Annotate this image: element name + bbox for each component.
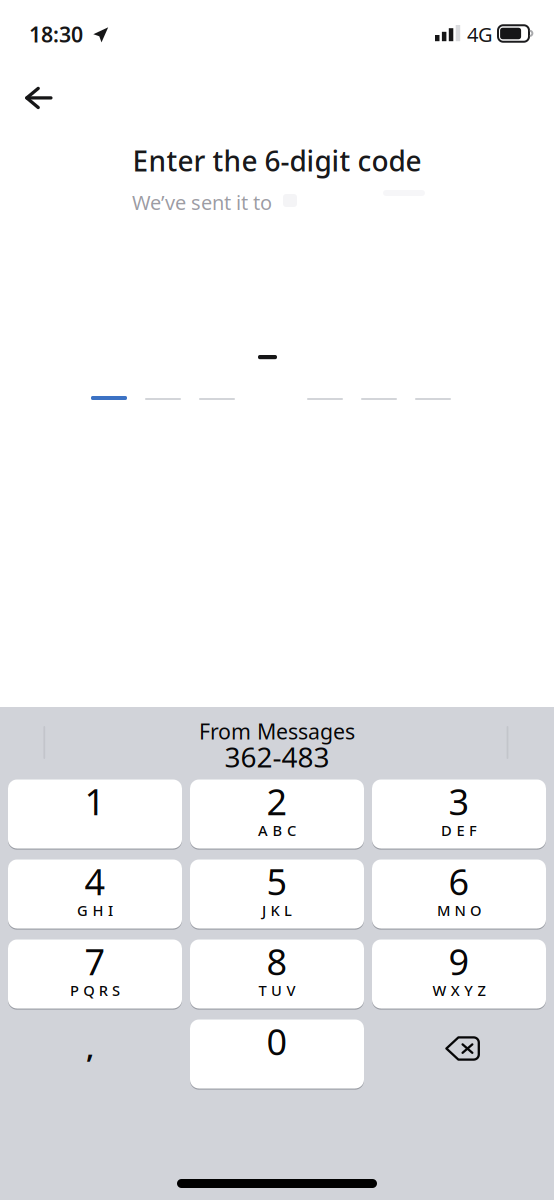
staticText: 0: [266, 1017, 287, 1065]
button[interactable]: Back: [0, 72, 76, 130]
staticText: We’ve sent it to: [132, 189, 272, 216]
staticText: F: [469, 820, 477, 840]
staticText: ,: [86, 1027, 94, 1066]
staticText: B: [272, 820, 282, 840]
staticText: M: [437, 900, 450, 920]
button[interactable]: 3: [372, 779, 546, 849]
staticText: 5: [266, 857, 287, 905]
staticText: R: [99, 980, 108, 1000]
button[interactable]: 8: [190, 939, 364, 1009]
staticText: H: [92, 900, 103, 920]
staticText: W: [432, 980, 446, 1000]
button[interactable]: 7: [8, 939, 182, 1009]
staticText: X: [451, 980, 460, 1000]
staticText: T: [259, 980, 267, 1000]
staticText: 2: [266, 777, 287, 825]
staticText: N: [454, 900, 465, 920]
staticText: E: [456, 820, 464, 840]
staticText: G: [77, 900, 88, 920]
staticText: From Messages: [199, 717, 355, 745]
staticText: Q: [83, 980, 94, 1000]
staticText: 18:30: [29, 20, 83, 48]
staticText: 362-483: [224, 738, 329, 775]
staticText: Enter the 6-digit code: [132, 142, 421, 179]
staticText: O: [470, 900, 481, 920]
staticText: I: [108, 900, 113, 920]
staticText: 7: [84, 937, 105, 985]
staticText: S: [112, 980, 120, 1000]
button[interactable]: Comma: [8, 1019, 182, 1089]
staticText: L: [284, 900, 292, 920]
staticText: U: [271, 980, 282, 1000]
staticText: 4: [84, 857, 105, 905]
button[interactable]: 0: [190, 1019, 364, 1089]
button[interactable]: 4: [8, 859, 182, 929]
staticText: C: [287, 820, 296, 840]
staticText: 1: [84, 777, 105, 825]
staticText: 8: [266, 937, 287, 985]
staticText: Z: [478, 980, 486, 1000]
staticText: P: [70, 980, 79, 1000]
button[interactable]: 2: [190, 779, 364, 849]
button[interactable]: 6: [372, 859, 546, 929]
staticText: 4G: [467, 21, 493, 48]
staticText: V: [286, 980, 295, 1000]
staticText: A: [258, 820, 268, 840]
staticText: 3: [448, 777, 469, 825]
staticText: 6: [448, 857, 469, 905]
staticText: J: [262, 900, 266, 920]
staticText: D: [441, 820, 452, 840]
button[interactable]: 1: [8, 779, 182, 849]
button[interactable]: 9: [372, 939, 546, 1009]
button[interactable]: Delete: [372, 1019, 546, 1089]
staticText: K: [270, 900, 279, 920]
button[interactable]: 5: [190, 859, 364, 929]
staticText: Y: [464, 980, 473, 1000]
button[interactable]: From Messages: [127, 717, 427, 769]
staticText: 9: [448, 937, 469, 985]
